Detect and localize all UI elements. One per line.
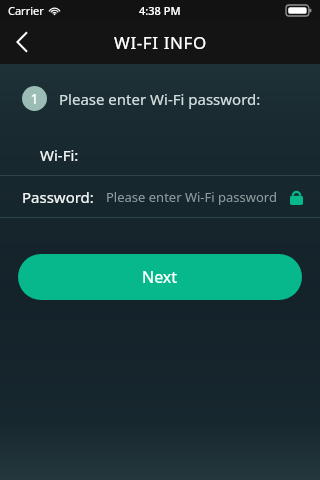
staticText: 1	[30, 89, 39, 108]
button[interactable]: Show password	[284, 185, 308, 209]
staticText: Please enter Wi-Fi password:	[59, 89, 261, 109]
button[interactable]: Password:	[0, 176, 320, 217]
button[interactable]: Wi-Fi:	[0, 135, 320, 175]
button[interactable]: Next	[18, 254, 302, 300]
staticText: 4:38 PM	[139, 3, 181, 18]
staticText: WI-FI INFO	[114, 31, 207, 54]
staticText: Password:	[22, 187, 94, 207]
staticText: Please enter Wi-Fi password	[106, 188, 277, 206]
button[interactable]: Back	[0, 20, 44, 64]
staticText: Carrier	[8, 3, 44, 18]
staticText: Next	[142, 266, 178, 288]
staticText: Wi-Fi:	[40, 145, 79, 165]
